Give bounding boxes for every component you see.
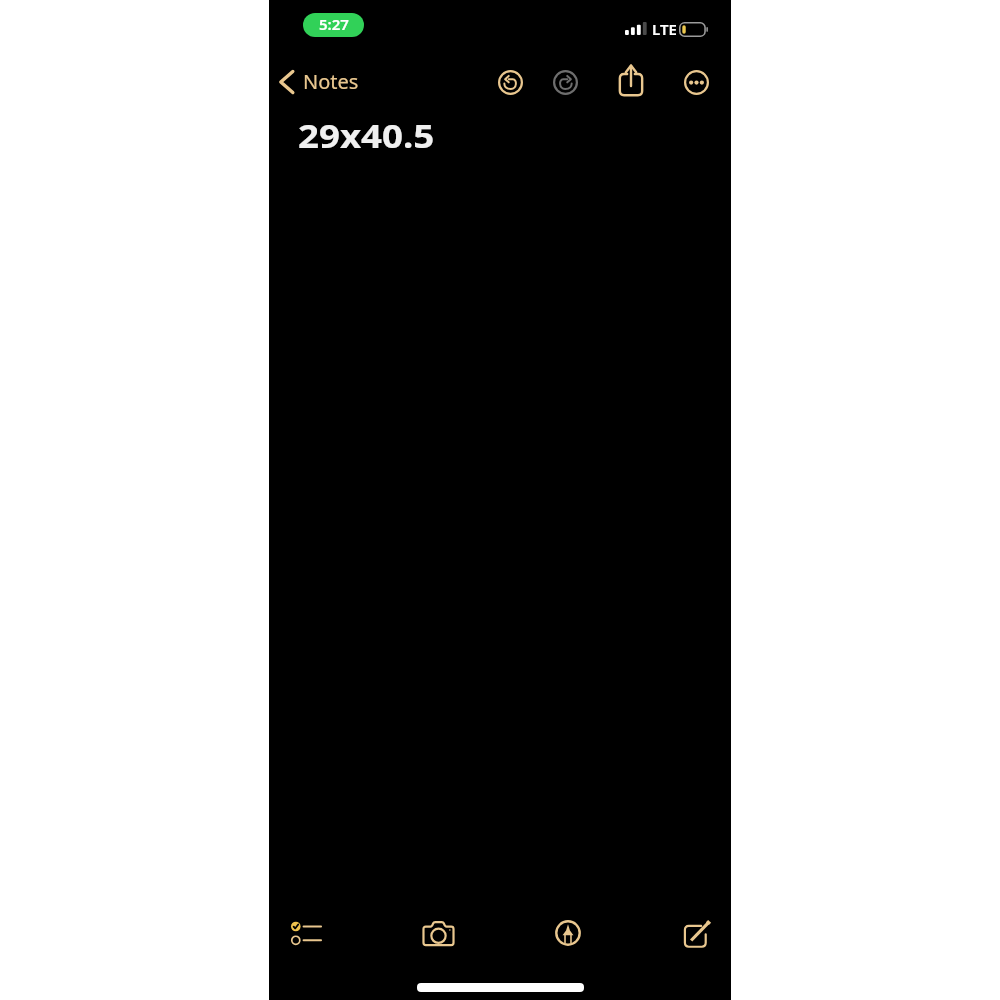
button[interactable]: Camera [414,909,462,957]
staticText: Notes [303,68,359,95]
button[interactable]: Undo [491,63,529,101]
button[interactable]: 5:27 [303,13,364,37]
button[interactable]: Share [611,60,651,100]
button[interactable]: Redo [546,63,584,101]
staticText: 5:27 [319,14,349,34]
button[interactable]: Markup [544,909,592,957]
staticText: 29x40.5 [298,114,435,158]
staticText: LTE [652,19,677,39]
button[interactable]: More options [677,63,715,101]
button[interactable]: Notes [273,62,367,102]
button[interactable]: New note [673,909,721,957]
button[interactable]: Checklist [282,909,330,957]
